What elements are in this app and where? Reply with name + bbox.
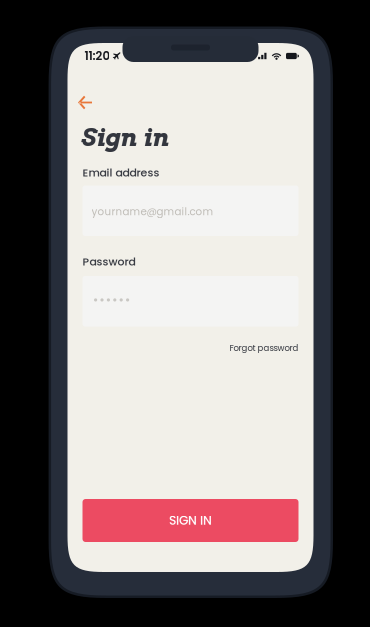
button[interactable]: Back [67, 87, 104, 118]
staticText: 11:20 [84, 48, 110, 64]
staticText: Password [82, 254, 135, 269]
staticText: Email address [82, 165, 159, 180]
staticText: SIGN IN [169, 512, 212, 529]
staticText: Sign in [81, 123, 169, 152]
button[interactable]: Forgot password [82, 339, 298, 357]
staticText: Forgot password [229, 342, 298, 354]
staticText: yourname@gmail.com [91, 205, 213, 219]
button[interactable]: SIGN IN [82, 499, 298, 542]
